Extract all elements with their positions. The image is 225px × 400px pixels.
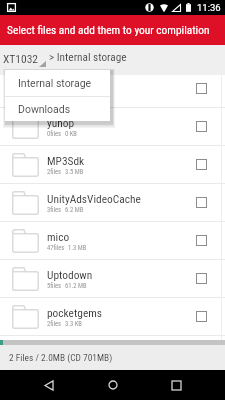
staticText: 0 KB bbox=[65, 130, 77, 138]
staticText: yuhop bbox=[47, 116, 75, 129]
staticText: MP3Sdk bbox=[47, 154, 85, 167]
staticText: pocketgems bbox=[47, 306, 103, 319]
button[interactable]: UnityAdsVideoCache bbox=[0, 184, 225, 221]
button[interactable]: Select mico bbox=[196, 235, 207, 246]
button[interactable]: Select yuhop bbox=[196, 121, 207, 132]
staticText: 3.3 KB bbox=[65, 320, 82, 328]
button[interactable]: Downloads bbox=[5, 97, 110, 121]
button[interactable]: MP3Sdk bbox=[0, 146, 225, 183]
button[interactable]: Select UnityAdsVideoCache bbox=[196, 197, 207, 208]
button[interactable]: Select kinect bbox=[196, 83, 207, 94]
button[interactable]: yuhop bbox=[0, 108, 225, 145]
button[interactable]: Select Uptodown bbox=[196, 273, 207, 284]
staticText: Downloads bbox=[18, 103, 71, 115]
button[interactable]: mico bbox=[0, 222, 225, 259]
button[interactable]: Uptodown bbox=[0, 260, 225, 297]
button[interactable]: XT1032 bbox=[0, 51, 48, 67]
button[interactable]: Select MP3Sdk bbox=[196, 159, 207, 170]
staticText: > Internal storage bbox=[49, 51, 127, 64]
button[interactable]: Recent apps bbox=[161, 370, 191, 400]
button[interactable]: Select pocketgems bbox=[196, 311, 207, 322]
staticText: 2 Files / 2.0MB (CD 701MB) bbox=[9, 352, 113, 363]
staticText: 11:36 bbox=[197, 2, 221, 13]
staticText: 3.5 MB bbox=[65, 168, 84, 176]
staticText: 61.2 MB bbox=[65, 282, 87, 290]
button[interactable]: pocketgems bbox=[0, 298, 225, 335]
staticText: Internal storage bbox=[18, 77, 92, 89]
staticText: 5files bbox=[47, 282, 62, 290]
staticText: 0files bbox=[47, 130, 62, 138]
staticText: mico bbox=[47, 230, 70, 243]
staticText: 0 KB bbox=[65, 92, 77, 100]
button[interactable]: kinect bbox=[0, 75, 225, 107]
staticText: 3files bbox=[47, 206, 62, 214]
button[interactable]: Back bbox=[34, 370, 64, 400]
staticText: XT1032 bbox=[3, 52, 39, 65]
staticText: Uptodown bbox=[47, 268, 93, 281]
staticText: 2files bbox=[47, 168, 62, 176]
staticText: 6.2 MB bbox=[65, 206, 84, 214]
staticText: 1.3 MB bbox=[68, 244, 87, 252]
button[interactable]: Home bbox=[98, 370, 128, 400]
staticText: kinect bbox=[47, 78, 75, 91]
staticText: Select files and add them to your compil… bbox=[7, 23, 210, 36]
staticText: 1files bbox=[47, 92, 62, 100]
staticText: 47files bbox=[47, 244, 65, 252]
staticText: UnityAdsVideoCache bbox=[47, 192, 141, 205]
staticText: 2files bbox=[47, 320, 62, 328]
button[interactable]: Internal storage bbox=[5, 70, 110, 96]
